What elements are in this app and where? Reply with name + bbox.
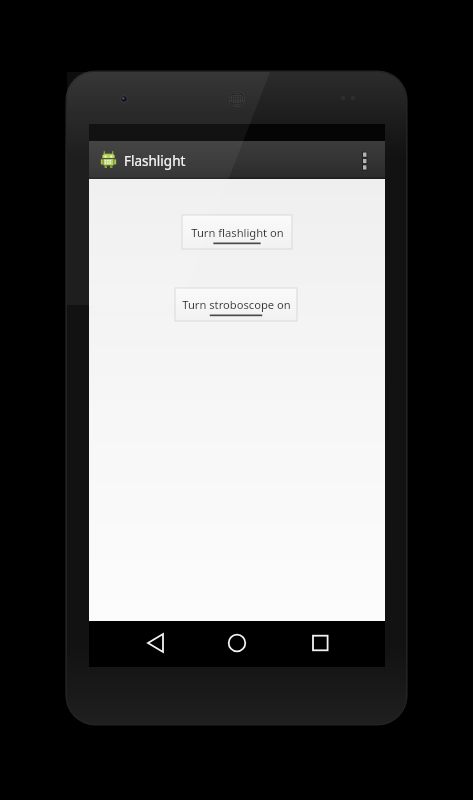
button[interactable]: Home (216, 621, 258, 667)
button[interactable]: Flashlight, navigate up (94, 145, 152, 175)
staticText: Turn flashlight on (191, 225, 284, 240)
button[interactable]: Recent apps (299, 621, 341, 667)
button[interactable]: Back (134, 621, 176, 667)
button[interactable]: Turn stroboscope on (175, 288, 297, 321)
button[interactable]: Turn flashlight on (182, 215, 292, 249)
button[interactable]: More options (352, 143, 382, 177)
staticText: Flashlight (124, 152, 186, 170)
staticText: Turn stroboscope on (182, 297, 291, 312)
